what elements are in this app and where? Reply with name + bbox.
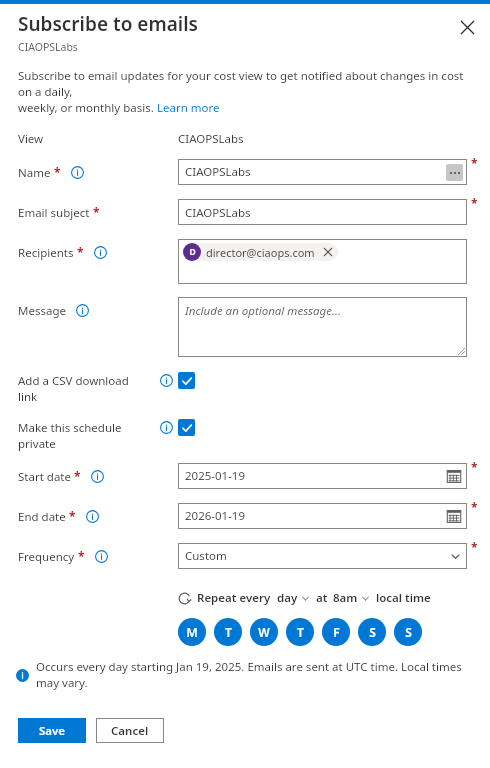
button[interactable]: Learn more — [157, 100, 220, 116]
staticText: * — [78, 548, 85, 564]
staticText: End date — [18, 509, 66, 525]
button[interactable]: Day T selected — [286, 618, 314, 646]
staticText: 8am — [333, 590, 358, 606]
staticText: private — [18, 436, 56, 452]
staticText: D — [189, 246, 196, 258]
staticText: S — [405, 624, 412, 640]
staticText: day — [277, 590, 298, 606]
staticText: Frequency — [18, 549, 75, 565]
staticText: * — [54, 164, 61, 180]
staticText: Make this schedule — [18, 420, 122, 436]
button[interactable]: Checked — [178, 419, 195, 436]
staticText: * — [471, 499, 478, 515]
staticText: Subscribe to emails — [18, 11, 198, 37]
staticText: T — [297, 624, 304, 640]
staticText: CIAOPSLabs — [178, 131, 244, 147]
staticText: local time — [376, 590, 431, 606]
staticText: Include an optional message... — [185, 303, 341, 319]
staticText: Recipients — [18, 245, 74, 261]
staticText: CIAOPSLabs — [185, 205, 251, 221]
button[interactable]: Save — [18, 718, 86, 743]
staticText: * — [69, 508, 76, 524]
staticText: * — [471, 539, 478, 555]
staticText: F — [333, 624, 340, 640]
button[interactable]: 8am — [333, 590, 370, 606]
button[interactable]: 2025-01-19 — [178, 463, 467, 489]
button[interactable]: Close — [455, 15, 479, 39]
staticText: * — [93, 204, 100, 220]
staticText: Custom — [185, 548, 227, 564]
button[interactable]: Day S selected — [394, 618, 422, 646]
staticText: at — [316, 590, 328, 606]
button[interactable]: Remove recipient — [321, 245, 335, 259]
button[interactable]: Day M selected — [178, 618, 206, 646]
button[interactable]: Include an optional message... — [178, 297, 467, 357]
staticText: Name — [18, 165, 51, 181]
button[interactable]: More information — [95, 550, 108, 563]
button[interactable]: Cancel — [96, 718, 164, 743]
button[interactable]: More information — [160, 374, 173, 387]
staticText: Add a CSV download — [18, 373, 129, 389]
button[interactable]: CIAOPSLabs — [178, 159, 467, 185]
button[interactable]: 2026-01-19 — [178, 503, 467, 529]
button[interactable]: Checked — [178, 372, 195, 389]
staticText: Subscribe to email updates for your cost… — [18, 68, 474, 100]
staticText: CIAOPSLabs — [185, 164, 251, 180]
button[interactable]: Pick a date — [446, 468, 462, 484]
staticText: Learn more — [157, 100, 220, 116]
button[interactable]: More information — [76, 304, 89, 317]
staticText: * — [77, 244, 84, 260]
staticText: T — [225, 624, 232, 640]
staticText: * — [471, 459, 478, 475]
staticText: Save — [39, 723, 66, 739]
button[interactable]: D — [183, 243, 338, 261]
staticText: Occurs every day starting Jan 19, 2025. … — [36, 659, 478, 691]
button[interactable]: Frequency: Custom — [178, 543, 467, 569]
staticText: * — [471, 155, 478, 171]
staticText: * — [471, 195, 478, 211]
staticText: W — [258, 624, 270, 640]
button[interactable]: D — [178, 239, 467, 284]
button[interactable]: day — [277, 590, 310, 606]
staticText: M — [186, 624, 198, 640]
staticText: * — [74, 468, 81, 484]
button[interactable]: CIAOPSLabs — [178, 199, 467, 225]
staticText: weekly, or monthly basis. — [18, 100, 157, 116]
staticText: Email subject — [18, 205, 90, 221]
button[interactable]: More information — [160, 421, 173, 434]
staticText: Start date — [18, 469, 71, 485]
staticText: S — [369, 624, 376, 640]
button[interactable]: More information — [91, 470, 104, 483]
staticText: Message — [18, 303, 66, 319]
button[interactable]: Day F selected — [322, 618, 350, 646]
staticText: link — [18, 389, 38, 405]
button[interactable]: Day T selected — [214, 618, 242, 646]
button[interactable]: More information — [94, 246, 107, 259]
staticText: 2025-01-19 — [185, 468, 246, 484]
button[interactable]: More information — [71, 166, 84, 179]
staticText: CIAOPSLabs — [18, 40, 78, 52]
staticText: 2026-01-19 — [185, 508, 246, 524]
button[interactable]: More information — [86, 510, 99, 523]
button[interactable]: Pick a date — [446, 508, 462, 524]
staticText: View — [18, 131, 44, 147]
button[interactable]: Day W selected — [250, 618, 278, 646]
button[interactable]: Select name — [446, 164, 463, 181]
staticText: Cancel — [111, 723, 149, 739]
staticText: Repeat every — [197, 590, 271, 606]
button[interactable]: Day S selected — [358, 618, 386, 646]
staticText: director@ciaops.com — [206, 245, 315, 260]
